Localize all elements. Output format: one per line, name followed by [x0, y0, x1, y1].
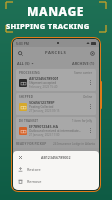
button[interactable]: SHIPPED [16, 93, 96, 115]
staticText: SHIPPED [19, 95, 34, 99]
button[interactable]: ALL (5) [17, 61, 34, 66]
button[interactable]: Settings [88, 49, 96, 57]
button[interactable]: ARCHIVE (1) [72, 61, 95, 66]
button[interactable]: More options [88, 126, 93, 135]
staticText: February, 2023 15:40 [29, 85, 58, 89]
staticText: SO456123789P [29, 100, 55, 105]
staticText: IN TRANSIT [19, 119, 39, 123]
staticText: 1 item for Jelly [72, 119, 93, 123]
staticText: Online [83, 95, 93, 99]
staticText: 27 January, 2023 09:15 [29, 109, 60, 113]
staticText: AB123456789001 [29, 76, 59, 81]
staticText: Restore [27, 167, 41, 172]
staticText: READY FOR PICKUP [16, 142, 47, 146]
staticText: Outbound received at intermediate... [29, 129, 82, 133]
staticText: Remove [27, 179, 42, 184]
button[interactable]: IN TRANSIT [16, 117, 96, 139]
button[interactable]: Search [16, 49, 24, 57]
staticText: Posting Collected [29, 105, 54, 109]
staticText: SHIPPING TRACKING LISTS [6, 21, 106, 31]
staticText: PARCELS [45, 50, 67, 56]
staticText: ARCHIVE (1) [72, 61, 95, 66]
button[interactable]: Close [17, 154, 23, 160]
staticText: Shipment accepted [29, 81, 57, 85]
button[interactable]: More options [88, 102, 93, 111]
button[interactable]: Remove [13, 175, 99, 187]
button[interactable]: Restore [13, 163, 99, 175]
staticText: MANAGE [27, 3, 85, 19]
staticText: 24 Insurance Lodge in Atlanta [53, 142, 96, 146]
button[interactable]: More options [88, 78, 93, 87]
staticText: PROCESSING [19, 71, 40, 75]
staticText: 21 January, 2023 17:00 [29, 133, 60, 137]
staticText: ALL (5) [17, 61, 30, 66]
staticText: Some carrier [74, 71, 93, 75]
staticText: AB123456789002 [41, 155, 71, 160]
staticText: EF789012345-HA [29, 124, 58, 129]
button[interactable]: PROCESSING [16, 69, 96, 91]
staticText: 5:03 PM [16, 41, 29, 46]
